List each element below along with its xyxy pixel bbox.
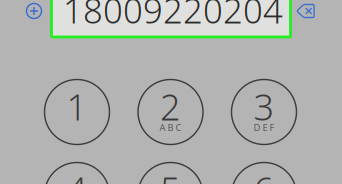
staticText: D E F bbox=[253, 121, 274, 134]
staticText: 5 bbox=[160, 166, 181, 184]
staticText: 6 bbox=[253, 166, 274, 184]
staticText: 1 bbox=[66, 83, 87, 130]
staticText: 18009220204 bbox=[63, 0, 283, 33]
button[interactable]: Delete bbox=[296, 2, 315, 19]
staticText: A B C bbox=[159, 121, 181, 134]
button[interactable]: Add contact bbox=[25, 2, 43, 20]
button[interactable]: 6 bbox=[231, 162, 296, 184]
button[interactable]: 1 bbox=[44, 79, 109, 144]
button[interactable]: 2 bbox=[138, 79, 203, 144]
button[interactable]: 4 bbox=[44, 162, 109, 184]
staticText: 3 bbox=[253, 83, 274, 130]
staticText: 4 bbox=[66, 166, 87, 184]
staticText: 2 bbox=[160, 83, 181, 130]
button[interactable]: 5 bbox=[138, 162, 203, 184]
button[interactable]: 3 bbox=[231, 79, 296, 144]
